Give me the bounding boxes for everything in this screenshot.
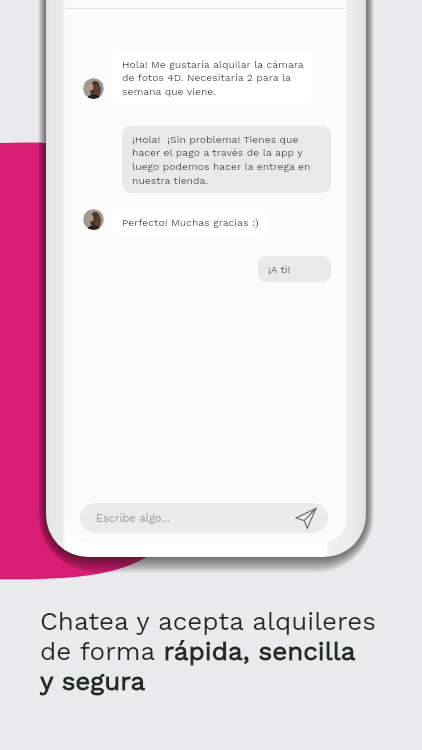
staticText: Perfecto! Muchas gracias :) xyxy=(122,216,259,228)
button[interactable]: ¡A ti! xyxy=(258,256,331,282)
staticText: Chatea y acepta alquileres de forma rápi… xyxy=(40,606,376,696)
staticText: ¡A ti! xyxy=(268,263,291,275)
other: Send message xyxy=(295,507,317,529)
staticText: ¡Hola! ¡Sin problema! Tienes que hacer e… xyxy=(132,133,311,186)
button[interactable]: Hola! Me gustaría alquilar la cámara de … xyxy=(112,51,314,104)
button[interactable]: Perfecto! Muchas gracias :) xyxy=(112,209,269,235)
button[interactable]: Escribe algo... xyxy=(80,503,328,533)
staticText: Hola! Me gustaría alquilar la cámara de … xyxy=(122,58,304,97)
button[interactable]: ¡Hola! ¡Sin problema! Tienes que hacer e… xyxy=(122,126,331,193)
staticText: Escribe algo... xyxy=(96,512,170,525)
